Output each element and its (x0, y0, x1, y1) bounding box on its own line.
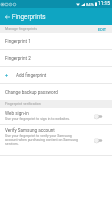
button[interactable]: Toggle (94, 136, 105, 145)
staticText: Fingerprint 2 (5, 56, 31, 61)
button[interactable]: Toggle (94, 112, 105, 121)
staticText: Change backup password (5, 90, 58, 95)
button[interactable]: Fingerprint 1 (0, 33, 112, 49)
button[interactable]: Add fingerprint (0, 67, 112, 83)
button[interactable]: EDIT (97, 25, 107, 33)
staticText: Use your fingerprint to verify your Sams… (5, 134, 84, 146)
staticText: 11:15 (98, 1, 110, 7)
staticText: EDIT (98, 27, 106, 31)
button[interactable]: Fingerprint 2 (0, 50, 112, 66)
staticText: Manage fingerprints (5, 27, 38, 31)
staticText: Verify Samsung account (5, 128, 55, 133)
staticText: Web sign-in (5, 111, 29, 116)
staticText: Add fingerprint (16, 73, 47, 78)
button[interactable]: Change backup password (0, 84, 112, 100)
staticText: Use your fingerprint to sign in to websi… (5, 117, 71, 121)
button[interactable]: Web sign-in (0, 108, 112, 124)
staticText: 84% (86, 2, 94, 7)
staticText: Fingerprint 1 (5, 39, 31, 44)
button[interactable]: Navigate up (0, 8, 12, 25)
staticText: Fingerprint verification (5, 102, 41, 106)
staticText: Fingerprints (12, 13, 46, 21)
button[interactable]: Verify Samsung account (0, 125, 112, 155)
